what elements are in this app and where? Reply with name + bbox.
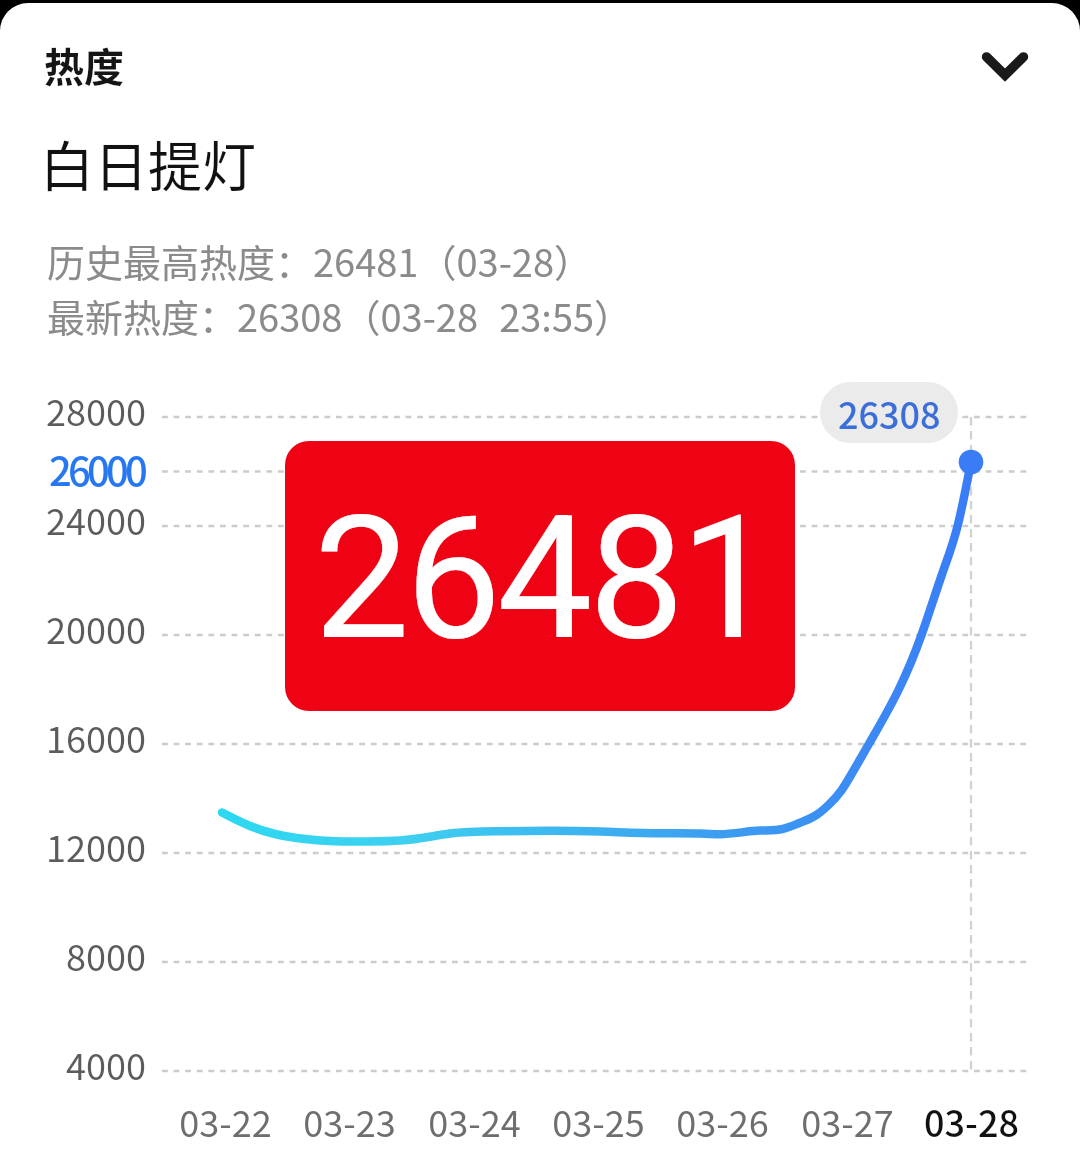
button[interactable]: 26481 <box>285 441 795 711</box>
staticText: 8000 <box>66 929 146 981</box>
staticText: 28000 <box>46 384 146 436</box>
staticText: 03-27 <box>801 1095 894 1147</box>
staticText: 4000 <box>66 1038 146 1090</box>
staticText: 03-28 <box>924 1095 1019 1147</box>
staticText: 最新热度：26308（03-28 23:55） <box>47 288 633 343</box>
staticText: 热度 <box>44 36 124 94</box>
staticText: 历史最高热度：26481（03-28） <box>47 233 592 288</box>
staticText: 03-26 <box>676 1095 769 1147</box>
staticText: 12000 <box>46 820 146 872</box>
staticText: 24000 <box>46 493 146 545</box>
staticText: 26308 <box>838 387 941 439</box>
staticText: 03-22 <box>179 1095 272 1147</box>
button[interactable]: 热度 <box>44 36 124 94</box>
button[interactable]: Collapse <box>960 20 1050 110</box>
staticText: 白日提灯 <box>40 124 256 202</box>
staticText: 26000 <box>49 440 144 498</box>
staticText: 03-24 <box>428 1095 521 1147</box>
staticText: 16000 <box>46 711 146 763</box>
staticText: 03-25 <box>552 1095 645 1147</box>
staticText: 20000 <box>46 602 146 654</box>
staticText: 03-23 <box>303 1095 396 1147</box>
staticText: 26481 <box>314 479 772 678</box>
